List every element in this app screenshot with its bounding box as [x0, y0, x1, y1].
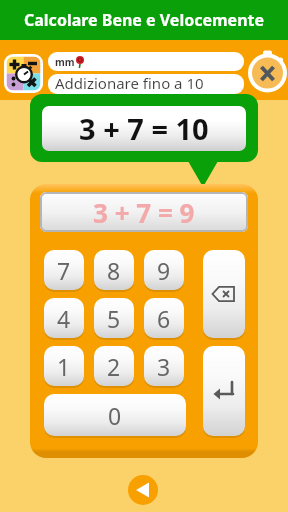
button[interactable]: 0: [44, 394, 186, 436]
staticText: 8: [107, 255, 121, 286]
staticText: 3: [157, 351, 171, 382]
staticText: 6: [157, 303, 171, 334]
button[interactable]: 3: [144, 346, 184, 386]
staticText: mm: [55, 55, 75, 69]
staticText: 1: [57, 351, 71, 382]
button[interactable]: [203, 250, 245, 338]
staticText: Calcolare Bene e Velocemente: [24, 9, 265, 31]
staticText: 7: [57, 255, 71, 286]
button[interactable]: 4: [44, 298, 84, 338]
staticText: 2: [107, 351, 121, 382]
staticText: 4: [57, 303, 71, 334]
staticText: Addizionare fino a 10: [55, 74, 204, 93]
staticText: 0: [108, 400, 122, 431]
button[interactable]: [128, 475, 158, 505]
button[interactable]: 2: [94, 346, 134, 386]
button[interactable]: 1: [44, 346, 84, 386]
button[interactable]: [203, 346, 245, 436]
button[interactable]: 9: [144, 250, 184, 290]
button[interactable]: [4, 54, 43, 93]
staticText: 5: [107, 303, 121, 334]
button[interactable]: Addizionare fino a 10: [48, 74, 244, 94]
button[interactable]: 6: [144, 298, 184, 338]
button[interactable]: 8: [94, 250, 134, 290]
button[interactable]: mm: [48, 52, 244, 71]
button[interactable]: 5: [94, 298, 134, 338]
staticText: 9: [157, 255, 171, 286]
staticText: 3 + 7 = 9: [93, 195, 195, 230]
button[interactable]: [246, 50, 288, 96]
button[interactable]: 7: [44, 250, 84, 290]
staticText: 3 + 7 = 10: [79, 109, 209, 148]
